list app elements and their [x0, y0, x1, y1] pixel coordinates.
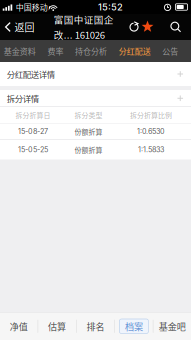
button[interactable]: 刷新	[128, 20, 140, 34]
staticText: 估算	[48, 320, 66, 333]
staticText: 中国移动	[16, 1, 48, 13]
staticText: 持仓分析	[75, 45, 107, 57]
button[interactable]: 拆分详情	[0, 90, 191, 106]
button[interactable]: 持仓分析	[75, 40, 107, 62]
button[interactable]: 档案	[115, 312, 153, 340]
staticText: 拆分类型	[74, 110, 102, 120]
staticText: 公告	[162, 45, 178, 57]
staticText: 费率	[47, 45, 63, 57]
staticText: 档案	[125, 320, 143, 333]
staticText: 份额折算	[74, 145, 102, 155]
staticText: 拆分折算比例	[130, 110, 172, 120]
staticText: 1:1.5833	[138, 145, 164, 154]
button[interactable]: 基金吧	[153, 312, 191, 340]
staticText: 净值	[10, 320, 28, 333]
button[interactable]: 分红配送	[119, 40, 151, 62]
staticText: 15-05-25	[18, 145, 48, 154]
button[interactable]: 收藏	[140, 20, 155, 34]
staticText: 15-08-27	[18, 127, 48, 136]
staticText: 15:52	[98, 1, 123, 13]
staticText: 改... 161026	[54, 28, 105, 42]
button[interactable]: 净值	[0, 312, 38, 340]
button[interactable]: 分红配送详情	[0, 62, 191, 86]
staticText: 拆分详情	[7, 92, 39, 104]
staticText: 分红配送详情	[7, 68, 55, 80]
staticText: 返回	[15, 20, 35, 34]
staticText: 排名	[86, 320, 104, 333]
staticText: 基金吧	[159, 320, 186, 333]
staticText: 分红配送	[119, 45, 151, 57]
staticText: 富国中证国企	[54, 12, 114, 26]
staticText: 份额折算	[74, 126, 102, 136]
button[interactable]: 排名	[76, 312, 114, 340]
button[interactable]: 费率	[47, 40, 63, 62]
staticText: 1:0.6530	[137, 127, 165, 136]
staticText: 拆分折算日	[15, 110, 50, 120]
button[interactable]: 搜索	[169, 20, 191, 34]
button[interactable]: 公告	[162, 40, 178, 62]
button[interactable]: 返回	[0, 14, 40, 40]
button[interactable]: 基金资料	[4, 40, 36, 62]
button[interactable]: 估算	[38, 312, 76, 340]
staticText: 基金资料	[4, 45, 36, 57]
